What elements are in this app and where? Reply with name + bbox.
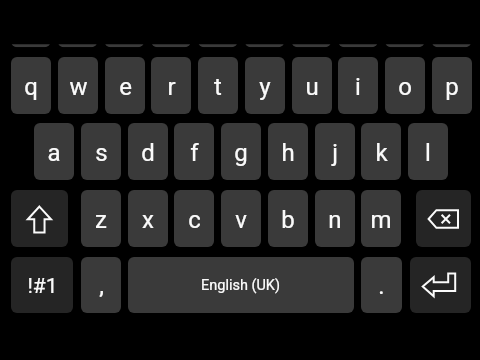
staticText: k [375, 139, 388, 167]
staticText: y [259, 73, 271, 101]
staticText: e [119, 73, 132, 101]
staticText: v [235, 206, 247, 234]
button[interactable]: z [81, 190, 121, 247]
staticText: q [24, 73, 38, 101]
button[interactable]: d [128, 123, 168, 180]
staticText: f [190, 139, 199, 167]
button[interactable]: o [385, 57, 425, 114]
button[interactable]: v [221, 190, 261, 247]
button[interactable]: b [268, 190, 308, 247]
button[interactable]: Shift [11, 190, 68, 247]
staticText: l [425, 139, 431, 167]
staticText: a [47, 139, 61, 167]
button[interactable]: l [408, 123, 448, 180]
staticText: h [281, 139, 295, 167]
button[interactable]: , [81, 257, 121, 313]
button[interactable]: g [221, 123, 261, 180]
button[interactable]: j [315, 123, 355, 180]
staticText: . [378, 272, 385, 300]
staticText: , [99, 272, 104, 300]
button[interactable]: Enter [410, 257, 471, 313]
button[interactable]: w [58, 57, 98, 114]
button[interactable]: . [361, 257, 402, 313]
button[interactable]: s [81, 123, 121, 180]
staticText: g [234, 139, 248, 167]
button[interactable]: h [268, 123, 308, 180]
button[interactable]: k [361, 123, 401, 180]
button[interactable]: i [338, 57, 378, 114]
button[interactable]: p [432, 57, 472, 114]
staticText: o [398, 73, 412, 101]
staticText: t [214, 73, 222, 101]
button[interactable]: u [292, 57, 332, 114]
button[interactable]: y [245, 57, 285, 114]
button[interactable]: English (UK) [128, 257, 354, 313]
staticText: i [355, 73, 361, 101]
staticText: s [95, 139, 108, 167]
staticText: c [188, 206, 201, 234]
button[interactable]: c [174, 190, 214, 247]
button[interactable]: q [11, 57, 51, 114]
button[interactable]: m [361, 190, 401, 247]
staticText: m [370, 206, 392, 234]
staticText: r [167, 73, 176, 101]
staticText: b [281, 206, 295, 234]
staticText: d [141, 139, 155, 167]
button[interactable]: Backspace [416, 190, 471, 247]
button[interactable]: t [198, 57, 238, 114]
staticText: z [95, 206, 107, 234]
button[interactable]: f [174, 123, 214, 180]
button[interactable]: Symbols [11, 257, 73, 313]
button[interactable]: r [151, 57, 191, 114]
button[interactable]: n [315, 190, 355, 247]
staticText: u [305, 73, 319, 101]
staticText: j [332, 139, 338, 167]
staticText: !#1 [27, 274, 58, 299]
staticText: x [142, 206, 154, 234]
staticText: w [69, 73, 88, 101]
button[interactable]: a [34, 123, 74, 180]
staticText: p [445, 73, 459, 101]
staticText: English (UK) [201, 277, 281, 294]
button[interactable]: e [105, 57, 145, 114]
staticText: n [328, 206, 342, 234]
button[interactable]: x [128, 190, 168, 247]
